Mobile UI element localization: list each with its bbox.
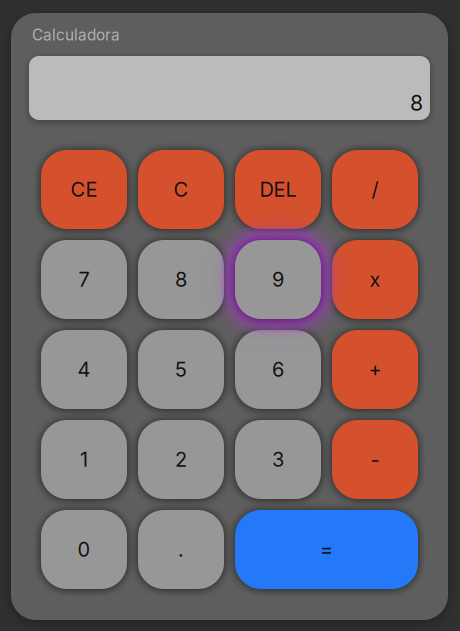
button[interactable]: 7 (41, 240, 127, 319)
staticText: 8 (175, 267, 187, 292)
staticText: 8 (410, 90, 423, 116)
button[interactable]: 1 (41, 420, 127, 499)
button[interactable]: CE (41, 150, 127, 229)
staticText: . (178, 537, 184, 562)
staticText: = (320, 537, 333, 562)
staticText: 5 (175, 357, 187, 382)
button[interactable]: = (235, 510, 418, 589)
button[interactable]: - (332, 420, 418, 499)
button[interactable]: 3 (235, 420, 321, 499)
button[interactable]: 4 (41, 330, 127, 409)
button[interactable]: x (332, 240, 418, 319)
staticText: CE (70, 177, 97, 202)
button[interactable]: / (332, 150, 418, 229)
staticText: + (368, 357, 381, 382)
button[interactable]: 2 (138, 420, 224, 499)
button[interactable]: + (332, 330, 418, 409)
button[interactable]: 0 (41, 510, 127, 589)
button[interactable]: 9 (235, 240, 321, 319)
button[interactable]: 5 (138, 330, 224, 409)
button[interactable]: 6 (235, 330, 321, 409)
staticText: DEL (259, 177, 296, 202)
button[interactable]: C (138, 150, 224, 229)
staticText: 0 (77, 537, 90, 562)
staticText: 7 (78, 267, 89, 292)
button[interactable]: . (138, 510, 224, 589)
staticText: x (369, 267, 380, 292)
staticText: 6 (272, 357, 284, 382)
staticText: 1 (80, 447, 88, 472)
staticText: 3 (272, 447, 284, 472)
button[interactable]: DEL (235, 150, 321, 229)
staticText: 4 (77, 357, 90, 382)
staticText: 9 (272, 267, 284, 292)
staticText: Calculadora (32, 26, 120, 44)
staticText: / (371, 177, 378, 202)
staticText: C (173, 177, 188, 202)
staticText: 2 (175, 447, 187, 472)
button[interactable]: 8 (138, 240, 224, 319)
staticText: - (370, 447, 379, 472)
